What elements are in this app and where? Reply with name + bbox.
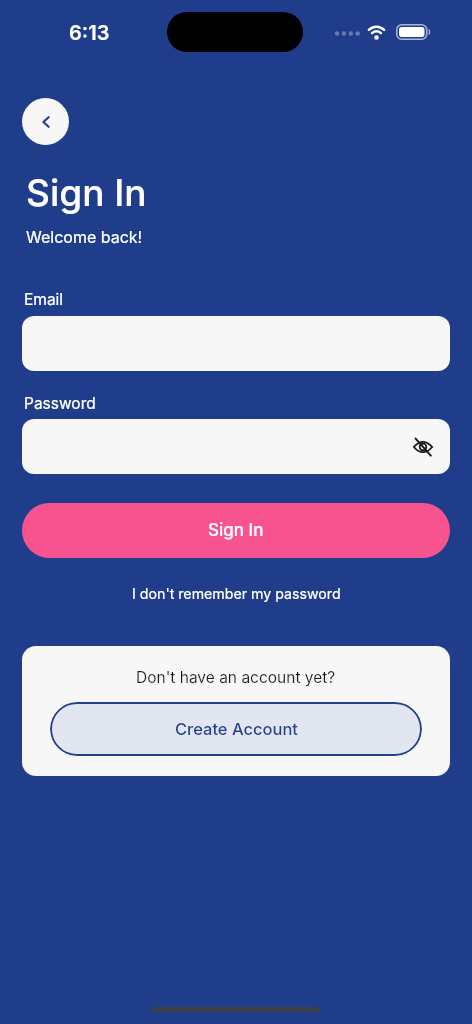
staticText: Sign In: [208, 520, 264, 541]
button[interactable]: I don't remember my password: [0, 582, 472, 604]
staticText: Don't have an account yet?: [136, 668, 336, 687]
staticText: 6:13: [69, 21, 110, 45]
staticText: I don't remember my password: [132, 585, 341, 602]
button[interactable]: [22, 316, 450, 371]
staticText: Welcome back!: [26, 227, 143, 246]
staticText: Sign In: [26, 170, 147, 215]
staticText: Create Account: [175, 719, 298, 739]
button[interactable]: [22, 98, 69, 145]
button[interactable]: [411, 435, 435, 459]
button[interactable]: Create Account: [50, 702, 422, 756]
staticText: Password: [24, 394, 96, 413]
button[interactable]: [22, 419, 450, 474]
staticText: Email: [24, 290, 64, 309]
button[interactable]: Sign In: [22, 503, 450, 558]
